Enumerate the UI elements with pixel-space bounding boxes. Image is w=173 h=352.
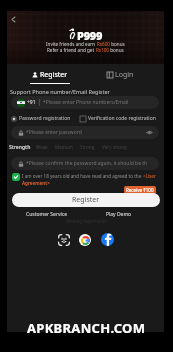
staticText: *Please enter Phone numbers/Email <box>43 99 129 106</box>
button[interactable]: *Please enter password <box>11 126 159 139</box>
staticText: bonus <box>110 41 125 47</box>
staticText: Strong <box>80 144 95 150</box>
staticText: *Please confirm the password again, it s… <box>26 160 159 167</box>
button[interactable]: Password registration <box>11 115 71 122</box>
button[interactable]: Login <box>104 70 137 83</box>
button[interactable]: Customer Service <box>24 209 70 220</box>
staticText: Binding registration <box>66 218 108 224</box>
button[interactable]: +91 <box>11 96 159 109</box>
staticText: Login <box>115 70 134 80</box>
button[interactable]: Back <box>8 14 19 25</box>
staticText: Password registration <box>19 115 71 122</box>
staticText: Rs600 <box>97 41 110 47</box>
staticText: Strength <box>9 144 31 151</box>
button[interactable]: Register <box>30 70 70 84</box>
staticText: <User <box>143 173 156 179</box>
staticText: Register <box>40 70 68 80</box>
staticText: Play Demo <box>106 211 132 218</box>
button[interactable]: Play Demo <box>104 209 134 220</box>
staticText: Register <box>72 195 100 205</box>
button[interactable]: I am over 18 years old and have read and… <box>12 173 160 186</box>
staticText: Support Phone number/Email Register <box>10 88 110 95</box>
button[interactable]: *Please confirm the password again, it s… <box>11 157 159 170</box>
staticText: Rs100 <box>96 47 109 53</box>
staticText: +91 <box>27 99 36 106</box>
button[interactable]: Register <box>12 193 160 207</box>
staticText: *Please enter password <box>26 129 146 136</box>
staticText: Weak <box>36 144 48 150</box>
staticText: Agreement> <box>22 180 50 186</box>
staticText: Refer a friend and get <box>47 47 96 53</box>
staticText: I am over 18 years old and have read and… <box>22 173 143 179</box>
staticText: P999 <box>77 28 103 43</box>
staticText: Invite friends and earn <box>46 41 97 47</box>
staticText: Receive ₹100 <box>126 187 154 193</box>
staticText: Customer Service <box>26 211 68 218</box>
staticText: bonus <box>109 47 124 53</box>
staticText: Verification code registration <box>88 115 156 122</box>
staticText: Medium <box>55 144 73 150</box>
button[interactable]: Face ID login <box>57 233 70 246</box>
button[interactable]: Sign in with Google <box>79 234 91 246</box>
button[interactable]: Verification code registration <box>80 115 156 122</box>
button[interactable]: Sign in with Facebook <box>101 233 114 246</box>
staticText: APKBRANCH.COM <box>27 319 146 337</box>
staticText: Very strong <box>102 144 127 150</box>
